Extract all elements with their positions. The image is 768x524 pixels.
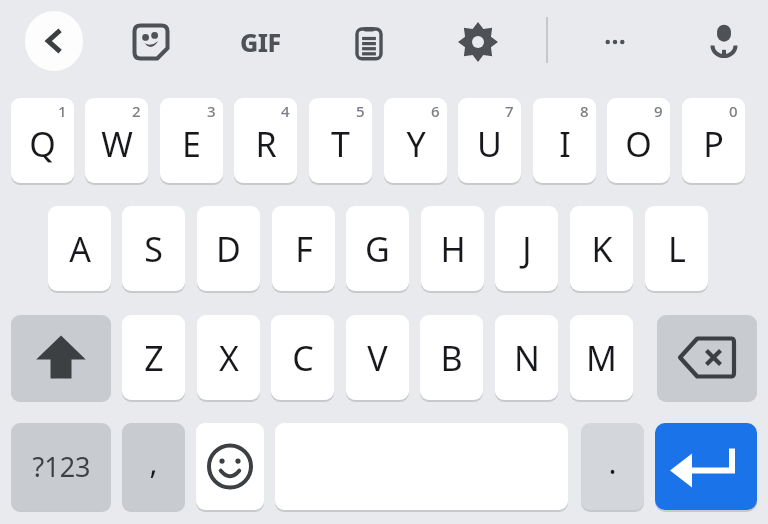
staticText: 4 [281,101,290,121]
button[interactable]: Enter [655,423,757,510]
staticText: O [625,121,652,167]
button[interactable]: R [234,98,297,183]
staticText: 2 [132,101,141,121]
button[interactable]: Back [25,11,83,71]
staticText: G [365,226,390,272]
button[interactable]: W [85,98,148,183]
button[interactable]: H [421,206,484,291]
staticText: X [219,335,239,381]
button[interactable]: E [160,98,223,183]
staticText: 3 [207,101,216,121]
button[interactable]: More options [587,14,643,70]
staticText: 9 [654,101,663,121]
button[interactable]: N [495,315,558,400]
button[interactable]: Backspace [657,315,757,400]
button[interactable]: Stickers [123,14,179,70]
button[interactable]: G [346,206,409,291]
button[interactable]: M [570,315,633,400]
staticText: A [69,226,91,272]
button[interactable]: T [309,98,372,183]
button[interactable]: . [581,423,644,510]
staticText: N [514,335,540,381]
button[interactable]: Settings [450,14,506,70]
staticText: B [440,335,463,381]
staticText: I [559,121,571,167]
staticText: W [101,121,133,167]
staticText: 6 [431,101,440,121]
staticText: GIF [240,25,281,59]
button[interactable]: Y [384,98,447,183]
button[interactable]: C [271,315,334,400]
button[interactable]: V [346,315,409,400]
button[interactable]: D [197,206,260,291]
staticText: R [255,121,277,167]
button[interactable]: Clipboard [341,14,397,70]
staticText: C [292,335,314,381]
staticText: F [295,226,313,272]
staticText: E [182,121,201,167]
staticText: 5 [356,101,365,121]
staticText: V [367,335,388,381]
button[interactable]: Shift [11,315,111,400]
staticText: U [477,121,502,167]
staticText: L [668,226,686,272]
staticText: 0 [729,101,738,121]
button[interactable]: I [533,98,596,183]
staticText: K [591,226,613,272]
staticText: ?123 [32,448,91,485]
staticText: 8 [580,101,589,121]
button[interactable]: F [272,206,335,291]
staticText: J [522,226,532,272]
staticText: 1 [58,101,67,121]
staticText: Q [29,121,56,167]
button[interactable]: , [122,423,185,510]
button[interactable]: Q [11,98,74,183]
button[interactable]: ?123 [11,423,111,510]
button[interactable]: S [122,206,185,291]
button[interactable]: A [48,206,111,291]
button[interactable]: Voice input [696,14,752,70]
button[interactable]: B [420,315,483,400]
staticText: T [331,121,350,167]
staticText: , [149,442,158,483]
button[interactable]: U [458,98,521,183]
staticText: S [144,226,163,272]
button[interactable]: X [197,315,260,400]
button[interactable]: O [607,98,670,183]
staticText: H [440,226,466,272]
button[interactable]: L [645,206,708,291]
button[interactable]: GIF [226,20,294,64]
button[interactable]: K [570,206,633,291]
staticText: Z [144,335,164,381]
button[interactable]: J [495,206,558,291]
staticText: . [608,442,617,483]
staticText: D [216,226,241,272]
button[interactable]: Z [122,315,185,400]
button[interactable]: P [682,98,745,183]
staticText: Y [406,121,426,167]
button[interactable]: Emoji [196,423,264,510]
staticText: 7 [505,101,514,121]
staticText: P [703,121,724,167]
staticText: M [586,335,617,381]
